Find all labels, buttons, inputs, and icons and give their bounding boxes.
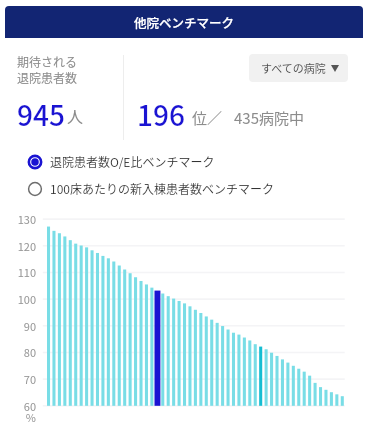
staticText: 100床あたりの新入棟患者数ベンチマーク [50,180,274,197]
staticText: 945 [17,94,65,135]
button[interactable]: すべての病院 [249,54,348,82]
staticText: 他院ベンチマーク [134,13,235,31]
staticText: 人 [67,104,84,127]
staticText: 退院患者数 [17,69,78,86]
staticText: 70 [10,371,36,387]
staticText: 196 [137,94,185,135]
button[interactable]: 100床あたりの新入棟患者数ベンチマーク [5,175,363,202]
staticText: すべての病院 [261,60,326,76]
staticText: ／ [207,107,223,129]
staticText: 130 [10,211,36,227]
staticText: % [10,409,36,425]
staticText: 110 [10,264,36,280]
staticText: 80 [10,344,36,360]
staticText: 120 [10,238,36,254]
staticText: 退院患者数O/E比ベンチマーク [50,153,215,170]
staticText: 位 [192,107,208,129]
staticText: 期待される [17,53,78,70]
button[interactable]: 退院患者数O/E比ベンチマーク [5,148,363,175]
staticText: 60 [10,398,36,414]
staticText: 435病院中 [234,107,304,129]
staticText: 90 [10,318,36,334]
staticText: 100 [10,291,36,307]
